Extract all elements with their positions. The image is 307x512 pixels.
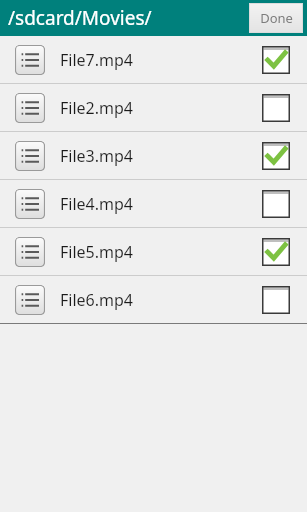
button[interactable]: File4.mp4: [0, 180, 307, 227]
staticText: File2.mp4: [60, 97, 262, 119]
button[interactable]: File2.mp4: [0, 84, 307, 131]
button[interactable]: Done: [249, 3, 303, 33]
staticText: File6.mp4: [60, 289, 262, 311]
button[interactable]: Selected: [262, 142, 290, 170]
button[interactable]: File3.mp4: [0, 132, 307, 179]
button[interactable]: Not selected: [262, 190, 290, 218]
staticText: File5.mp4: [60, 241, 262, 263]
button[interactable]: File7.mp4: [0, 36, 307, 83]
staticText: File4.mp4: [60, 193, 262, 215]
staticText: File3.mp4: [60, 145, 262, 167]
button[interactable]: File5.mp4: [0, 228, 307, 275]
staticText: File7.mp4: [60, 49, 262, 71]
button[interactable]: Selected: [262, 238, 290, 266]
button[interactable]: File6.mp4: [0, 276, 307, 323]
button[interactable]: Not selected: [262, 286, 290, 314]
staticText: Done: [260, 9, 293, 27]
staticText: /sdcard/Movies/: [8, 5, 152, 31]
button[interactable]: Selected: [262, 46, 290, 74]
button[interactable]: Not selected: [262, 94, 290, 122]
